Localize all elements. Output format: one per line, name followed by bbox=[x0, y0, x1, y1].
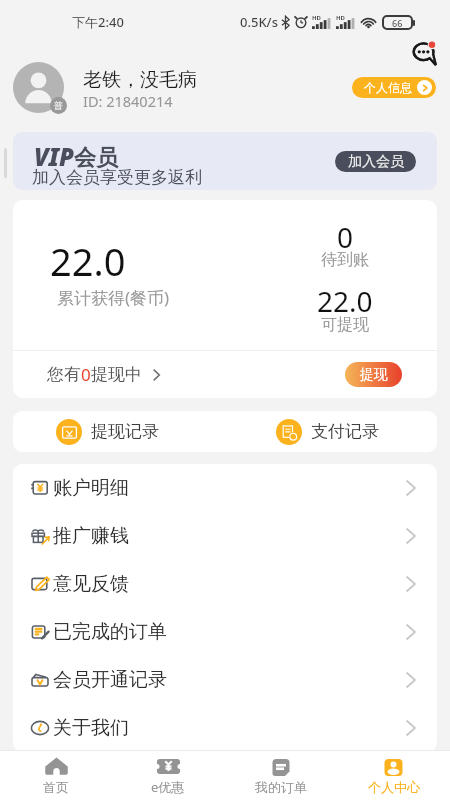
staticText: 我的订单 bbox=[255, 779, 307, 795]
staticText: 提现记录 bbox=[91, 421, 159, 442]
staticText: 普 bbox=[54, 100, 63, 111]
staticText: 个人中心 bbox=[368, 779, 420, 795]
staticText: HD bbox=[312, 14, 321, 22]
staticText: 关于我们 bbox=[53, 716, 129, 740]
staticText: e优惠 bbox=[151, 778, 185, 796]
staticText: 0.5K/s bbox=[240, 13, 278, 31]
button[interactable]: 个人信息 bbox=[352, 77, 436, 98]
staticText: 待到账 bbox=[321, 250, 369, 270]
staticText: 22.0 bbox=[317, 282, 373, 320]
staticText: 账户明细 bbox=[53, 476, 129, 500]
staticText: 会员 bbox=[74, 144, 118, 172]
staticText: 可提现 bbox=[321, 315, 369, 335]
staticText: 老铁，没毛病 bbox=[83, 68, 197, 92]
staticText: 0 bbox=[337, 218, 354, 256]
staticText: 下午2:40 bbox=[72, 13, 124, 31]
button[interactable]: 关于我们 bbox=[13, 704, 437, 752]
staticText: 已完成的订单 bbox=[53, 620, 167, 644]
staticText: 0 bbox=[81, 363, 91, 386]
staticText: 会员开通记录 bbox=[53, 668, 167, 692]
staticText: 提现 bbox=[360, 366, 388, 384]
button[interactable]: 个人中心 bbox=[337, 751, 450, 800]
button[interactable]: 意见反馈 bbox=[13, 560, 437, 608]
button[interactable]: 提现记录 bbox=[13, 411, 225, 452]
staticText: 推广赚钱 bbox=[53, 524, 129, 548]
staticText: 66 bbox=[392, 17, 403, 29]
staticText: 个人信息 bbox=[364, 80, 412, 95]
button[interactable]: 我的订单 bbox=[224, 751, 337, 800]
button[interactable]: 首页 bbox=[0, 751, 112, 800]
button[interactable]: 会员开通记录 bbox=[13, 656, 437, 704]
staticText: 意见反馈 bbox=[53, 572, 129, 596]
button[interactable]: 提现 bbox=[345, 362, 402, 387]
staticText: 首页 bbox=[43, 779, 69, 795]
button[interactable]: 您有 bbox=[13, 351, 437, 398]
button[interactable]: 账户明细 bbox=[13, 464, 437, 512]
staticText: 22.0 bbox=[50, 235, 126, 287]
staticText: 累计获得(餐币) bbox=[57, 286, 170, 309]
staticText: 提现中 bbox=[91, 364, 142, 385]
staticText: 您有 bbox=[47, 364, 81, 385]
staticText: HD bbox=[336, 14, 345, 22]
button[interactable]: 支付记录 bbox=[225, 411, 437, 452]
button[interactable]: VIP bbox=[13, 132, 437, 190]
button[interactable]: 已完成的订单 bbox=[13, 608, 437, 656]
staticText: 加入会员 bbox=[348, 153, 404, 171]
button[interactable]: Messages bbox=[412, 40, 438, 66]
staticText: 支付记录 bbox=[311, 421, 379, 442]
staticText: 加入会员享受更多返利 bbox=[32, 167, 202, 188]
button[interactable]: 推广赚钱 bbox=[13, 512, 437, 560]
staticText: VIP bbox=[34, 140, 74, 173]
staticText: ID: 21840214 bbox=[83, 91, 173, 111]
button[interactable]: e优惠 bbox=[112, 751, 224, 800]
button[interactable]: 加入会员 bbox=[335, 151, 416, 172]
